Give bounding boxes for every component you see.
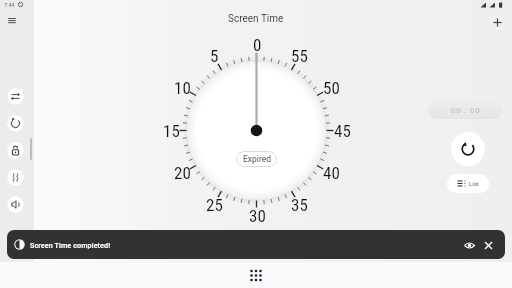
button[interactable] [451, 132, 485, 166]
button[interactable]: List [447, 174, 489, 193]
staticText: 40 [323, 163, 340, 183]
staticText: 20 [174, 163, 191, 183]
staticText: 00 : 00 [451, 106, 481, 115]
staticText: Screen Time [228, 13, 284, 25]
staticText: 0 [253, 35, 262, 55]
staticText: 15 [163, 121, 180, 141]
staticText: 35 [291, 195, 308, 215]
button[interactable] [247, 266, 265, 284]
staticText: 25 [206, 195, 223, 215]
staticText: List [469, 180, 479, 187]
staticText: Expired [243, 154, 271, 164]
button[interactable] [490, 15, 505, 30]
button[interactable]: Expired [236, 151, 277, 167]
button[interactable] [6, 141, 25, 160]
button[interactable] [4, 14, 20, 27]
button[interactable] [480, 237, 496, 253]
button[interactable] [462, 238, 476, 252]
button[interactable] [6, 195, 25, 214]
staticText: 50 [323, 78, 340, 98]
button[interactable]: 00 : 00 [428, 101, 503, 119]
staticText: 55 [291, 46, 308, 66]
staticText: Screen Time completed! [30, 241, 111, 249]
staticText: 30 [249, 206, 266, 226]
button[interactable] [6, 168, 25, 187]
staticText: 7:44 [4, 2, 15, 8]
staticText: 10 [174, 78, 191, 98]
button[interactable] [6, 114, 25, 133]
button[interactable] [6, 87, 25, 106]
staticText: 45 [334, 121, 351, 141]
staticText: 5 [210, 46, 219, 66]
